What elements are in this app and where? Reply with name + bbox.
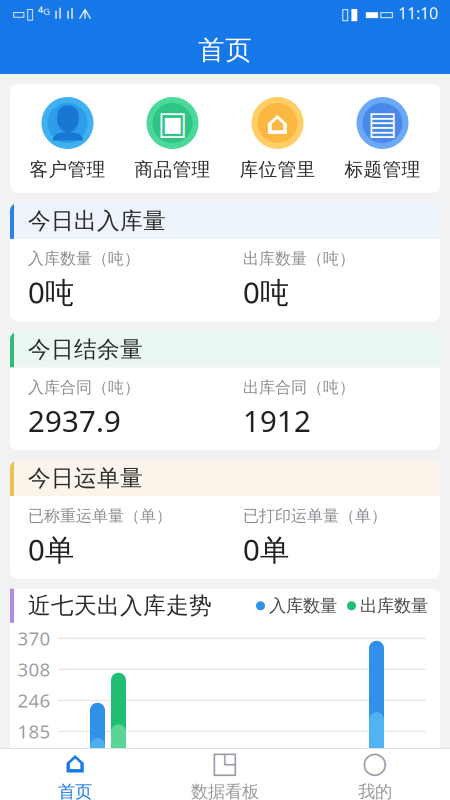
staticText: 0单 (28, 530, 74, 569)
button[interactable]: ◳ (150, 748, 300, 800)
staticText: 出库数量 (360, 595, 428, 616)
button[interactable]: ▣ (120, 96, 225, 181)
staticText: 入库数量 (269, 595, 337, 616)
staticText: 首页 (198, 34, 252, 66)
staticText: 2937.9 (28, 401, 121, 440)
staticText: ⌂ (64, 746, 85, 779)
staticText: 我的 (358, 781, 392, 800)
staticText: 👤 (47, 105, 87, 141)
staticText: 出库合同（吨） (243, 377, 355, 397)
staticText: 246 (17, 688, 50, 713)
staticText: ▯▮ ▬▭ 11:10 (341, 2, 438, 24)
staticText: 1912 (243, 401, 311, 440)
staticText: ○ (362, 746, 388, 779)
button[interactable]: 👤 (15, 96, 120, 181)
staticText: 0吨 (243, 273, 289, 312)
staticText: 近七天出入库走势 (28, 592, 212, 620)
staticText: 首页 (58, 781, 92, 800)
staticText: 数据看板 (191, 781, 259, 800)
staticText: 客户管理 (29, 158, 105, 181)
button[interactable]: ⌂ (225, 96, 330, 181)
staticText: 库位管里 (239, 158, 315, 181)
staticText: 今日运单量 (28, 464, 143, 492)
staticText: 308 (17, 657, 50, 682)
staticText: 370 (17, 626, 50, 651)
staticText: 出库数量（吨） (243, 249, 355, 269)
staticText: 入库合同（吨） (28, 377, 140, 397)
staticText: ▭▯ ⁴ᴳ ıl ıl ᗑ (12, 3, 92, 23)
staticText: 已打印运单量（单） (243, 506, 387, 526)
staticText: 商品管理 (134, 158, 210, 181)
staticText: 标题管理 (344, 158, 420, 181)
button[interactable]: ○ (300, 748, 450, 800)
staticText: 今日结余量 (28, 336, 143, 363)
staticText: 0吨 (28, 273, 74, 312)
staticText: 已称重运单量（单） (28, 506, 172, 526)
staticText: ⌂ (266, 105, 289, 141)
staticText: ◳ (211, 746, 239, 779)
button[interactable]: ⌂ (0, 748, 150, 800)
staticText: 0单 (243, 530, 289, 569)
button[interactable]: ▤ (330, 96, 435, 181)
staticText: 入库数量（吨） (28, 249, 140, 269)
staticText: ▣ (157, 105, 187, 141)
staticText: ▤ (367, 105, 397, 141)
staticText: 今日出入库量 (28, 207, 166, 235)
staticText: 185 (17, 719, 50, 744)
